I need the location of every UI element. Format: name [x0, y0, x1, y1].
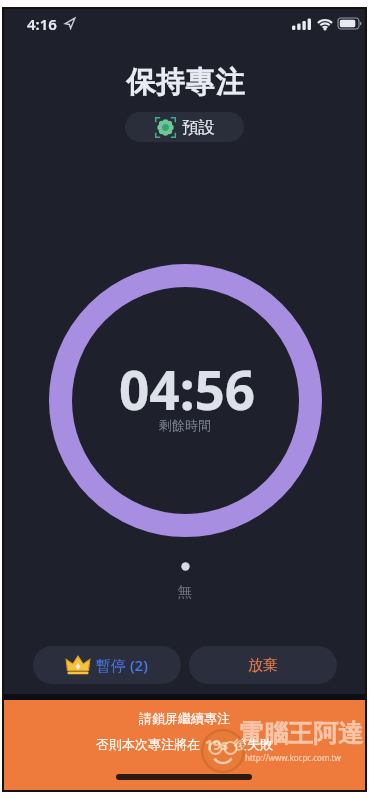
button[interactable]: 放棄 [189, 646, 337, 684]
staticText: 04:56 [119, 353, 256, 415]
staticText: 暫停 (2) [96, 655, 148, 675]
staticText: 19s [205, 735, 229, 754]
button[interactable]: 暫停 (2) [33, 646, 181, 684]
staticText: 無 [177, 583, 192, 602]
staticText: http://www.kocpc.com.tw [245, 752, 341, 763]
staticText: 請鎖屏繼續專注 [139, 710, 230, 726]
staticText: 否則本次專注將在 [96, 736, 200, 752]
staticText: 預設 [182, 117, 215, 138]
staticText: 保持專注 [126, 64, 246, 101]
staticText: 電腦王阿達 [238, 718, 363, 749]
button[interactable]: 預設 [125, 112, 244, 142]
staticText: 4:16 [27, 14, 57, 34]
button[interactable]: 請鎖屏繼續專注 [2, 700, 367, 792]
staticText: 後失敗 [234, 736, 273, 752]
staticText: 放棄 [248, 656, 278, 675]
staticText: 剩餘時間 [159, 417, 211, 433]
